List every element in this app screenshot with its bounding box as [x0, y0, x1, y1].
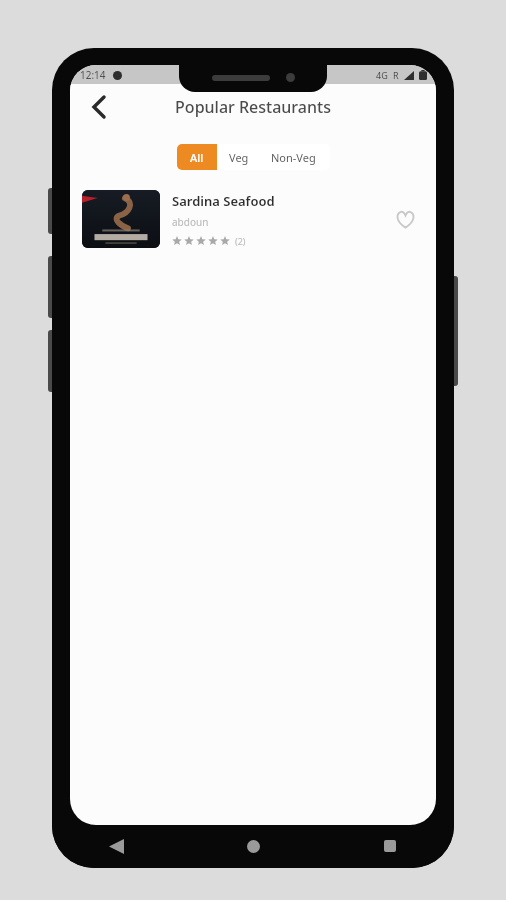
button[interactable]: All — [177, 144, 217, 170]
staticText: 4G — [376, 69, 388, 81]
staticText: Veg — [229, 150, 249, 165]
staticText: Sardina Seafood — [172, 192, 275, 210]
button[interactable]: Back — [82, 90, 116, 124]
button[interactable]: Recent apps — [370, 826, 410, 866]
button[interactable]: Veg — [217, 144, 261, 170]
button[interactable]: Add to favourites — [388, 202, 422, 236]
staticText: R — [393, 69, 399, 81]
staticText: (2) — [235, 235, 246, 247]
staticText: Non-Veg — [271, 150, 316, 165]
button[interactable]: Home — [233, 826, 273, 866]
staticText: 12:14 — [80, 68, 106, 82]
staticText: abdoun — [172, 215, 209, 229]
button[interactable]: Back — [96, 826, 136, 866]
staticText: Popular Restaurants — [175, 96, 331, 118]
staticText: All — [190, 150, 204, 165]
button[interactable]: Non-Veg — [261, 144, 330, 170]
button[interactable]: Sardina Seafood — [70, 188, 436, 250]
